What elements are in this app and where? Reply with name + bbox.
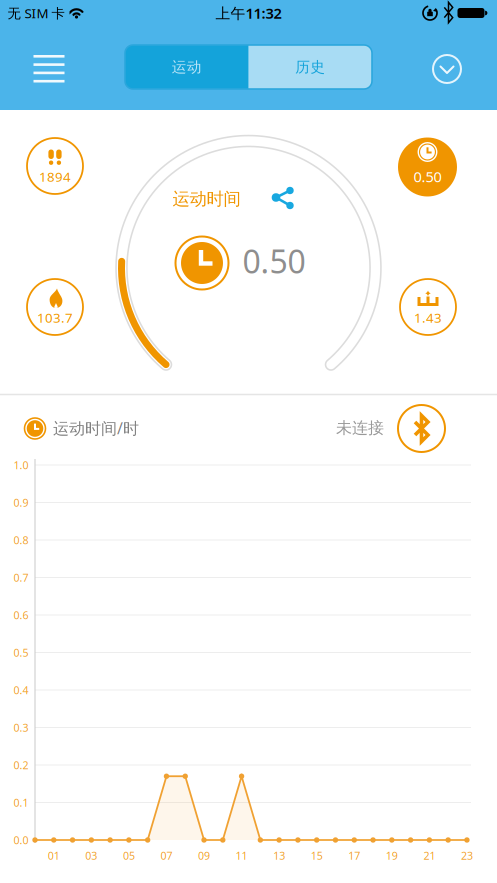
staticText: 0.50 bbox=[242, 240, 305, 282]
staticText: 0.0 bbox=[13, 833, 28, 847]
staticText: 11 bbox=[236, 848, 248, 863]
staticText: 运动时间 bbox=[172, 188, 240, 210]
staticText: 05 bbox=[123, 848, 135, 863]
staticText: 17 bbox=[348, 848, 360, 863]
staticText: 无 SIM 卡 bbox=[7, 4, 64, 22]
staticText: 0.7 bbox=[13, 570, 28, 585]
staticText: 23 bbox=[461, 848, 473, 863]
staticText: 01 bbox=[48, 848, 60, 863]
staticText: 21 bbox=[423, 848, 435, 863]
staticText: 0.3 bbox=[13, 720, 28, 735]
staticText: 0.5 bbox=[13, 645, 28, 660]
staticText: 03 bbox=[85, 848, 97, 863]
staticText: 13 bbox=[273, 848, 285, 863]
staticText: 0.1 bbox=[13, 795, 28, 810]
staticText: 0.50 bbox=[413, 167, 441, 186]
staticText: 1.0 bbox=[13, 458, 28, 472]
staticText: 运动 bbox=[172, 58, 202, 76]
staticText: 未连接 bbox=[336, 418, 384, 438]
staticText: 0.4 bbox=[13, 683, 28, 697]
staticText: 0.8 bbox=[13, 533, 28, 547]
button[interactable]: 历史 bbox=[248, 45, 372, 89]
staticText: 1894 bbox=[39, 168, 71, 185]
button[interactable]: Expand bbox=[433, 55, 461, 83]
staticText: 运动时间/时 bbox=[53, 417, 139, 439]
staticText: 历史 bbox=[295, 58, 325, 76]
staticText: 09 bbox=[198, 848, 210, 863]
staticText: 19 bbox=[386, 848, 398, 863]
staticText: 07 bbox=[160, 848, 172, 863]
button[interactable]: Menu bbox=[33, 55, 64, 82]
button[interactable]: 运动 bbox=[125, 45, 248, 89]
button[interactable]: Bluetooth connect bbox=[398, 405, 445, 452]
staticText: 0.9 bbox=[13, 495, 28, 510]
staticText: 上午11:32 bbox=[215, 3, 281, 23]
button[interactable]: Share bbox=[269, 185, 295, 211]
staticText: 0.6 bbox=[13, 608, 28, 622]
staticText: 103.7 bbox=[37, 309, 73, 326]
staticText: 1.43 bbox=[414, 309, 442, 326]
staticText: 0.2 bbox=[13, 758, 28, 772]
staticText: 15 bbox=[311, 848, 323, 863]
